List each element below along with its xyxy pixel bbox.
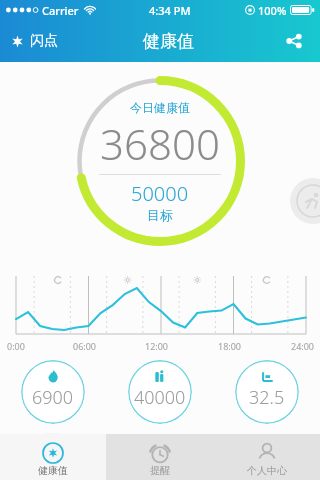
staticText: 18:00: [218, 340, 242, 352]
staticText: 个人中心: [247, 464, 287, 477]
button[interactable]: 闪点: [6, 26, 62, 56]
button[interactable]: 个人中心: [213, 434, 320, 480]
staticText: 0:00: [7, 340, 25, 352]
button[interactable]: Start activity: [290, 178, 320, 224]
button[interactable]: 提醒: [106, 434, 213, 480]
button[interactable]: Share: [276, 23, 312, 59]
staticText: 12:00: [145, 340, 169, 352]
button[interactable]: 40000: [128, 360, 192, 424]
staticText: 6900: [32, 385, 74, 410]
staticText: 32.5: [249, 385, 285, 410]
staticText: 4:34 PM: [149, 3, 191, 18]
staticText: 健康值: [38, 464, 68, 477]
button[interactable]: 健康值: [0, 434, 106, 480]
staticText: 36800: [100, 115, 220, 172]
staticText: 50000: [131, 180, 189, 207]
staticText: 06:00: [73, 340, 97, 352]
staticText: 目标: [147, 207, 173, 223]
button[interactable]: 6900: [21, 360, 85, 424]
staticText: 100%: [258, 3, 287, 18]
staticText: 今日健康值: [130, 100, 190, 115]
staticText: 40000: [134, 385, 186, 410]
staticText: Carrier: [42, 3, 79, 18]
staticText: 24:00: [291, 340, 315, 352]
button[interactable]: 32.5: [235, 360, 299, 424]
staticText: 闪点: [30, 32, 58, 50]
staticText: 提醒: [150, 464, 170, 477]
staticText: 健康值: [143, 31, 194, 52]
